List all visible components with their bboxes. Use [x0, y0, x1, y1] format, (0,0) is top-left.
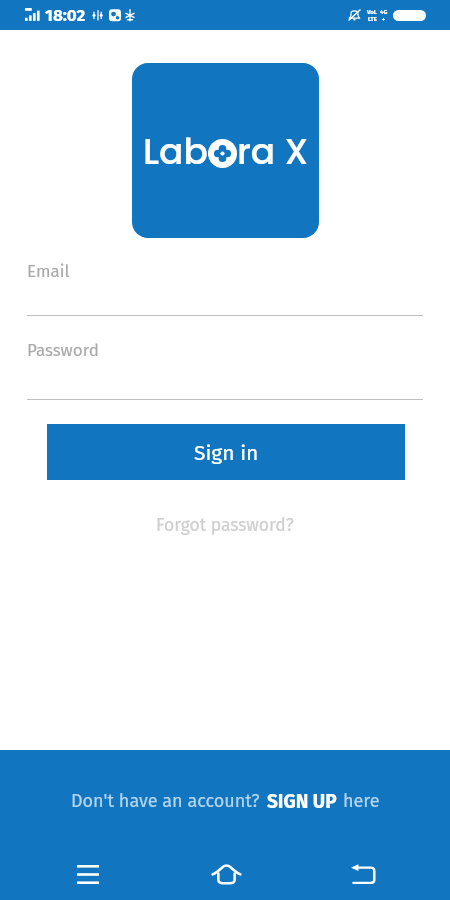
staticText: Lab: [143, 126, 208, 176]
button[interactable]: SIGN UP: [267, 790, 337, 813]
staticText: 18:02: [45, 5, 86, 25]
button[interactable]: Sign in: [47, 424, 405, 480]
staticText: 4G: [380, 8, 388, 15]
staticText: Sign in: [194, 440, 259, 465]
staticText: Don't have an account?: [71, 790, 260, 812]
staticText: here: [343, 790, 380, 812]
staticText: SIGN UP: [267, 790, 337, 813]
button[interactable]: Back: [318, 848, 408, 900]
button[interactable]: Password: [27, 340, 423, 400]
staticText: ra X: [237, 126, 309, 176]
button[interactable]: Home: [181, 848, 271, 900]
staticText: Forgot password?: [156, 515, 294, 536]
staticText: +: [382, 15, 386, 22]
button[interactable]: Forgot password?: [150, 509, 300, 542]
button[interactable]: Menu: [43, 848, 133, 900]
staticText: Email: [27, 261, 70, 281]
staticText: Password: [27, 340, 99, 360]
staticText: VoL: [367, 8, 377, 15]
button[interactable]: Email: [27, 261, 423, 316]
staticText: LTE: [368, 15, 377, 22]
